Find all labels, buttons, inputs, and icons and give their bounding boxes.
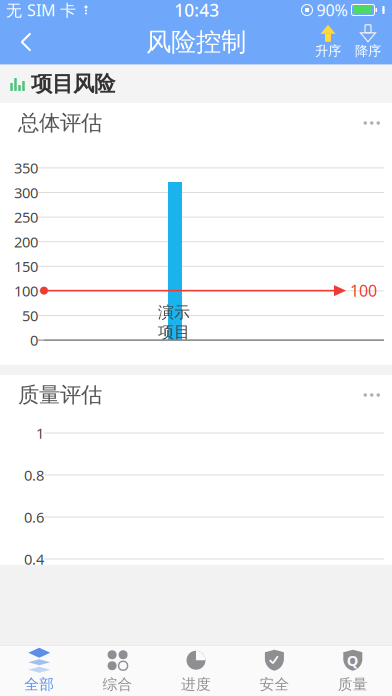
button[interactable]: 返回 xyxy=(4,20,48,64)
staticText: 无 SIM 卡 xyxy=(6,0,76,21)
staticText: 质量评估 xyxy=(18,382,102,408)
staticText: 0.6 xyxy=(24,507,44,527)
staticText: Q xyxy=(347,650,359,670)
staticText: 350 xyxy=(14,158,38,178)
staticText: 0.4 xyxy=(24,549,44,569)
button[interactable]: Q xyxy=(314,646,392,696)
staticText: 升序 xyxy=(315,43,341,59)
staticText: 1 xyxy=(36,423,44,443)
staticText: 10:43 xyxy=(174,0,219,21)
staticText: 安全 xyxy=(259,675,289,693)
staticText: 300 xyxy=(14,183,38,202)
staticText: 项目风险 xyxy=(31,71,115,97)
staticText: 0.8 xyxy=(24,465,44,485)
button[interactable]: 综合 xyxy=(78,646,157,696)
staticText: 项目 xyxy=(158,322,190,342)
staticText: 综合 xyxy=(103,675,133,693)
staticText: 风险控制 xyxy=(146,26,246,57)
button[interactable]: 更多 xyxy=(336,378,380,412)
button[interactable]: 全部 xyxy=(0,646,78,696)
staticText: 90% xyxy=(316,0,347,21)
button[interactable]: 进度 xyxy=(157,646,235,696)
button[interactable]: 升序 xyxy=(308,20,348,64)
staticText: 50 xyxy=(22,306,38,325)
staticText: 0 xyxy=(30,330,38,350)
staticText: 质量 xyxy=(338,675,368,693)
staticText: 150 xyxy=(14,257,38,276)
staticText: 250 xyxy=(14,207,38,227)
staticText: 总体评估 xyxy=(18,110,102,136)
staticText: 全部 xyxy=(24,675,54,693)
staticText: 200 xyxy=(14,232,38,251)
staticText: 100 xyxy=(350,280,377,301)
button[interactable]: 降序 xyxy=(348,20,388,64)
staticText: 进度 xyxy=(181,675,211,693)
button[interactable]: 更多 xyxy=(336,106,380,140)
staticText: 演示 xyxy=(158,303,190,322)
staticText: 降序 xyxy=(355,43,381,59)
staticText: 100 xyxy=(14,281,38,301)
button[interactable]: 安全 xyxy=(235,646,314,696)
